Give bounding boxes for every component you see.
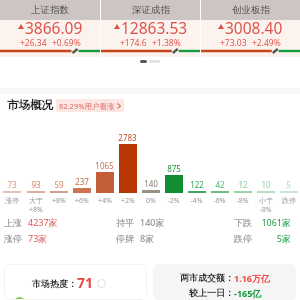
- staticText: 两市成交额：: [180, 272, 234, 283]
- staticText: 深证成指: [132, 4, 170, 16]
- other: Help: [97, 279, 106, 288]
- staticText: -4%: [190, 196, 203, 206]
- staticText: 小于: [259, 196, 273, 205]
- staticText: +8%: [52, 196, 66, 206]
- staticText: 市场概况: [7, 98, 53, 112]
- staticText: 42: [215, 179, 225, 190]
- staticText: +2%: [121, 196, 135, 206]
- staticText: 93: [31, 179, 41, 190]
- staticText: 59: [54, 179, 64, 190]
- staticText: 大于: [29, 196, 43, 205]
- staticText: 5: [286, 179, 291, 190]
- staticText: 停牌: [116, 233, 134, 244]
- button[interactable]: 涨停: [4, 232, 48, 244]
- staticText: 140: [144, 178, 158, 189]
- staticText: 71: [77, 273, 94, 292]
- staticText: 上涨: [4, 217, 22, 228]
- staticText: +2.49%: [252, 37, 281, 49]
- staticText: 3008.40: [225, 17, 283, 38]
- staticText: 237: [75, 176, 89, 187]
- staticText: -6%: [213, 196, 226, 206]
- button[interactable]: 深证成指: [101, 0, 200, 57]
- staticText: 3866.09: [25, 17, 83, 38]
- button[interactable]: 持平: [116, 216, 165, 228]
- staticText: 12863.53: [121, 17, 188, 38]
- staticText: 涨停: [4, 233, 22, 244]
- staticText: +73.03: [220, 37, 247, 49]
- staticText: +8%: [29, 205, 43, 215]
- button[interactable]: 下跌: [234, 216, 291, 228]
- staticText: 0%: [146, 196, 156, 206]
- staticText: 5家: [261, 232, 291, 244]
- staticText: 1065: [95, 160, 114, 171]
- staticText: 涨停: [5, 196, 19, 205]
- button[interactable]: 市场热度：: [4, 264, 147, 300]
- staticText: 2783: [118, 132, 137, 143]
- staticText: 8家: [140, 232, 155, 244]
- staticText: 875: [167, 163, 181, 174]
- staticText: +1.38%: [152, 37, 181, 49]
- button[interactable]: 上证指数: [0, 0, 100, 57]
- staticText: 市场热度：: [32, 278, 77, 289]
- staticText: 跌停: [234, 233, 252, 244]
- staticText: 跌停: [282, 196, 296, 205]
- button[interactable]: 82.29%用户看涨: [56, 99, 124, 112]
- staticText: 82.29%用户看涨: [59, 101, 115, 111]
- staticText: +26.34: [20, 37, 47, 49]
- staticText: 73家: [28, 232, 48, 244]
- staticText: 下跌: [234, 217, 252, 228]
- staticText: 创业板指: [232, 4, 270, 16]
- staticText: 122: [190, 179, 204, 190]
- staticText: -2%: [167, 196, 180, 206]
- button[interactable]: 停牌: [116, 232, 155, 244]
- staticText: 持平: [116, 217, 134, 228]
- staticText: +6%: [75, 196, 89, 206]
- staticText: -8%: [259, 205, 272, 215]
- staticText: +4%: [98, 196, 112, 206]
- button[interactable]: 两市成交额：: [153, 264, 296, 300]
- button[interactable]: 上涨: [4, 216, 58, 228]
- staticText: 1061家: [261, 216, 291, 228]
- staticText: 4237家: [28, 216, 58, 228]
- staticText: -165亿: [234, 287, 262, 299]
- staticText: 1.16万亿: [234, 272, 270, 284]
- staticText: 较上一日：: [189, 287, 234, 298]
- staticText: +0.69%: [52, 37, 81, 49]
- staticText: 10: [261, 179, 271, 190]
- staticText: 12: [238, 179, 248, 190]
- staticText: 73: [7, 179, 17, 190]
- staticText: 140家: [140, 216, 165, 228]
- button[interactable]: 跌停: [234, 232, 291, 244]
- button[interactable]: 创业板指: [201, 0, 300, 57]
- staticText: -8%: [236, 196, 249, 206]
- staticText: 上证指数: [31, 4, 69, 16]
- staticText: +174.6: [120, 37, 147, 49]
